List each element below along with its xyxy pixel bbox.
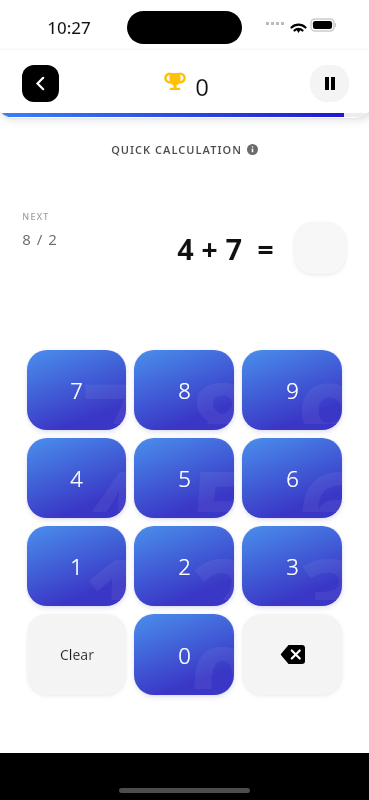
staticText: 4	[70, 463, 83, 493]
staticText: 3	[298, 526, 342, 600]
staticText: 7	[70, 375, 83, 405]
button[interactable]: 4	[27, 438, 126, 518]
staticText: 8	[178, 375, 191, 405]
button[interactable]: 3	[242, 526, 342, 606]
staticText: 7	[82, 350, 126, 424]
staticText: 1	[70, 551, 83, 581]
staticText: 6	[298, 438, 342, 512]
staticText: 8 / 2	[22, 229, 58, 249]
staticText: Clear	[60, 645, 94, 664]
button[interactable]: 5	[134, 438, 234, 518]
staticText: 3	[286, 551, 299, 581]
button[interactable]: Back	[22, 65, 59, 102]
staticText: 9	[286, 375, 299, 405]
staticText: 0	[178, 640, 191, 670]
button[interactable]: Backspace	[242, 614, 342, 695]
button[interactable]: Clear	[27, 614, 126, 695]
staticText: 6	[286, 463, 299, 493]
staticText: 4	[82, 438, 126, 512]
button[interactable]: 8	[134, 350, 234, 430]
button[interactable]: 9	[242, 350, 342, 430]
button[interactable]: 7	[27, 350, 126, 430]
staticText: 5	[178, 463, 191, 493]
button[interactable]: Pause	[310, 65, 349, 102]
staticText: 10:27	[47, 16, 91, 39]
staticText: 4 + 7 =	[177, 229, 274, 268]
staticText: 2	[190, 526, 234, 600]
button[interactable]: Info	[247, 144, 258, 155]
staticText: 5	[190, 438, 234, 512]
button[interactable]: 6	[242, 438, 342, 518]
staticText: 2	[178, 551, 191, 581]
staticText: 0	[190, 614, 234, 689]
staticText: 1	[82, 526, 126, 600]
staticText: NEXT	[22, 210, 50, 222]
staticText: 9	[298, 350, 342, 424]
staticText: QUICK CALCULATION	[111, 142, 242, 157]
button[interactable]: 2	[134, 526, 234, 606]
staticText: 8	[190, 350, 234, 424]
staticText: 0	[195, 70, 209, 103]
button[interactable]: 0	[134, 614, 234, 695]
button[interactable]: 1	[27, 526, 126, 606]
